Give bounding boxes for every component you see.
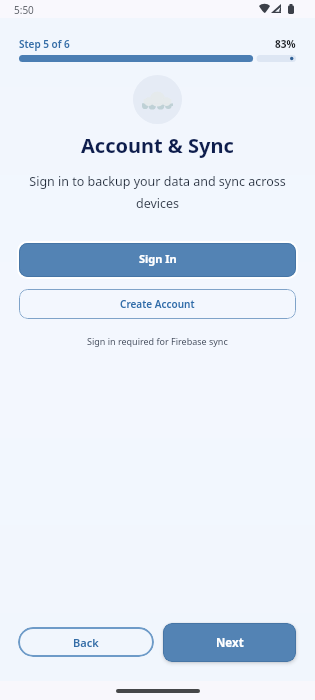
staticText: Sign in to backup your data and sync acr… [18, 173, 297, 212]
staticText: Create Account [120, 297, 195, 311]
staticText: Sign in required for Firebase sync [87, 335, 228, 347]
staticText: Sign In [139, 251, 177, 266]
staticText: 5:50 [14, 3, 34, 17]
button[interactable]: Create Account [19, 289, 296, 319]
button[interactable]: Back [18, 627, 154, 657]
staticText: 83% [275, 37, 296, 51]
button[interactable]: Next [163, 623, 296, 662]
staticText: Step 5 of 6 [19, 37, 70, 51]
button[interactable]: Sign In [19, 243, 296, 277]
staticText: Account & Sync [81, 132, 234, 159]
staticText: Next [216, 635, 244, 651]
staticText: Back [73, 635, 99, 650]
